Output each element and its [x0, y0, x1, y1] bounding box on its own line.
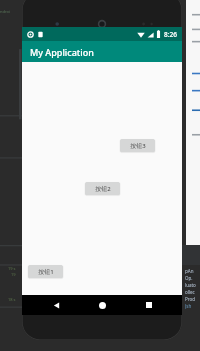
staticText: pAn [185, 268, 194, 274]
staticText: 按钮3 [130, 142, 146, 150]
staticText: 按钮2 [95, 185, 111, 193]
staticText: ollec [185, 289, 195, 295]
button[interactable]: 按钮1 [28, 265, 63, 278]
staticText: (sh [185, 303, 192, 309]
staticText: Op. [185, 275, 193, 281]
button[interactable]: Home [89, 295, 115, 315]
button[interactable]: 按钮2 [85, 182, 120, 195]
button[interactable]: Recent apps [136, 295, 162, 315]
staticText: luato [185, 282, 196, 288]
staticText: 8:26 [164, 30, 177, 39]
staticText: 按钮1 [38, 268, 54, 276]
staticText: My Application [30, 46, 94, 58]
staticText: 19 [11, 272, 16, 277]
staticText: 19 s [8, 266, 16, 271]
button[interactable]: Back [43, 295, 69, 315]
button[interactable]: 按钮3 [120, 139, 155, 152]
staticText: 18 s [8, 297, 16, 302]
staticText: ndroi [0, 9, 10, 14]
staticText: Prod [185, 296, 195, 302]
